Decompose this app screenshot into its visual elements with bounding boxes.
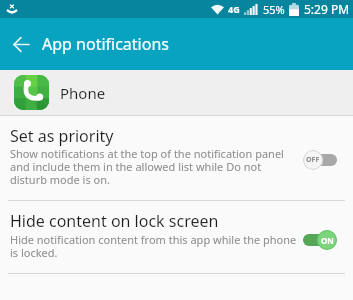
staticText: Hide notification content from this app … <box>10 232 297 247</box>
staticText: Set as priority <box>10 125 114 147</box>
staticText: 5:29 PM <box>304 1 350 17</box>
staticText: Hide content on lock screen <box>10 210 219 232</box>
staticText: OFF <box>306 155 320 165</box>
staticText: is locked. <box>10 245 58 260</box>
staticText: ON <box>321 235 334 246</box>
staticText: App notifications <box>42 33 169 55</box>
staticText: Show notifications at the top of the not… <box>10 146 284 161</box>
staticText: and include them in the allowed list whi… <box>10 159 262 174</box>
staticText: 55% <box>263 2 285 17</box>
button[interactable]: OFF <box>303 150 337 170</box>
button[interactable]: Phone <box>0 70 353 115</box>
staticText: 4G <box>228 3 240 15</box>
staticText: Phone <box>60 83 106 103</box>
button[interactable]: ON <box>303 230 337 250</box>
button[interactable] <box>0 18 42 70</box>
staticText: disturb mode is on. <box>10 172 110 187</box>
